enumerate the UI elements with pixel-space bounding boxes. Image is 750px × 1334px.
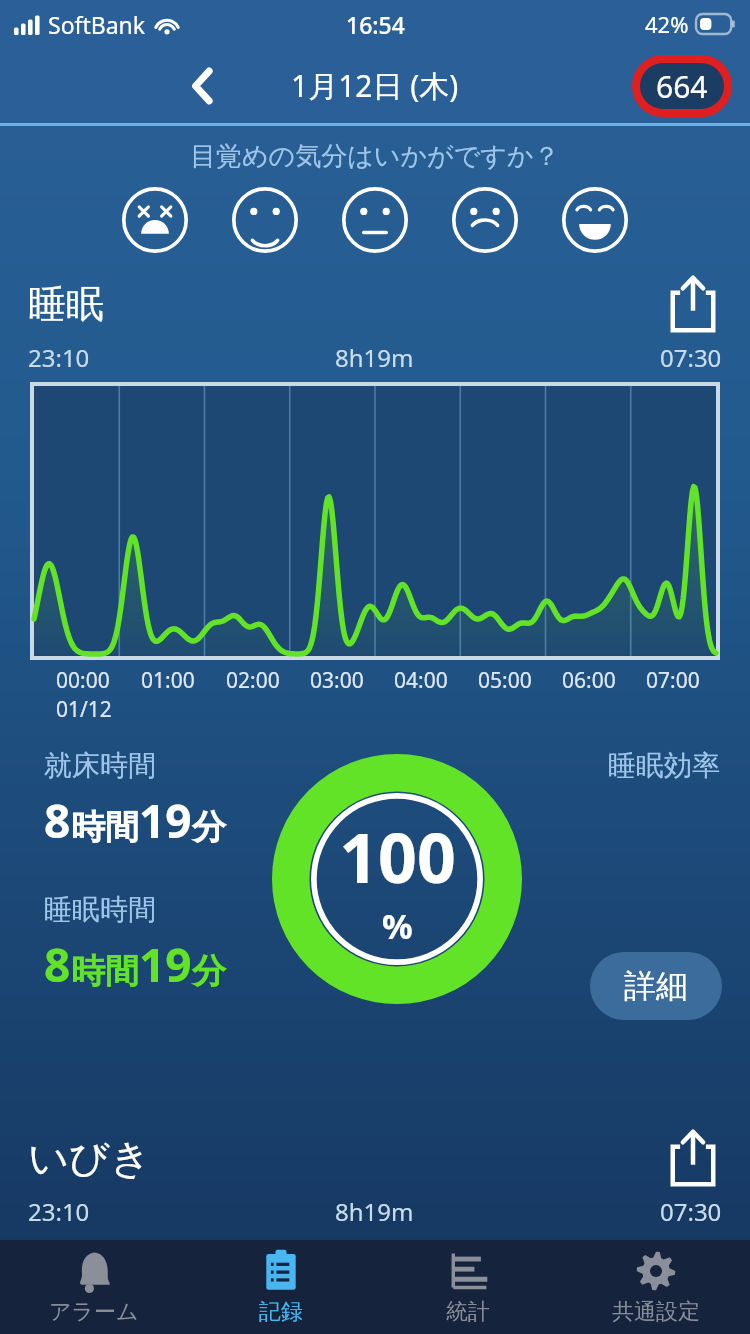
- staticText: 02:00: [226, 666, 280, 695]
- staticText: %: [382, 903, 413, 949]
- button[interactable]: Back: [178, 61, 228, 111]
- staticText: 01/12: [56, 695, 112, 724]
- button[interactable]: 統計: [374, 1240, 562, 1334]
- button[interactable]: 記録: [187, 1240, 374, 1334]
- button[interactable]: 664: [632, 55, 732, 117]
- staticText: 目覚めの気分はいかがですか？: [190, 140, 560, 173]
- staticText: 睡眠効率: [608, 748, 720, 783]
- staticText: 睡眠: [28, 280, 104, 328]
- staticText: 時間: [71, 950, 139, 993]
- staticText: 分: [192, 950, 226, 993]
- staticText: アラーム: [49, 1298, 139, 1326]
- button[interactable]: Mood 2: [340, 185, 410, 255]
- staticText: 19: [139, 933, 192, 996]
- staticText: 03:00: [310, 666, 364, 695]
- staticText: 1月12日 (木): [291, 65, 459, 106]
- button[interactable]: Sleep efficiency 100 percent: [272, 754, 522, 1004]
- staticText: 記録: [259, 1298, 303, 1326]
- staticText: 00:00: [56, 666, 110, 695]
- staticText: 664: [656, 66, 708, 107]
- staticText: 07:30: [660, 1195, 722, 1228]
- staticText: 07:00: [646, 666, 700, 695]
- button[interactable]: Mood 1: [230, 185, 300, 255]
- staticText: 01:00: [141, 666, 195, 695]
- staticText: 23:10: [28, 1195, 90, 1228]
- staticText: 06:00: [562, 666, 616, 695]
- staticText: 42%: [645, 9, 689, 39]
- staticText: SoftBank: [48, 9, 146, 40]
- staticText: 分: [192, 806, 226, 849]
- staticText: 睡眠時間: [44, 892, 156, 927]
- staticText: 時間: [71, 806, 139, 849]
- staticText: 8h19m: [335, 1195, 414, 1228]
- staticText: 8h19m: [335, 341, 414, 374]
- button[interactable]: Mood 3: [450, 185, 520, 255]
- staticText: いびき: [28, 1133, 151, 1183]
- staticText: 8: [44, 789, 71, 852]
- button[interactable]: Share: [664, 275, 722, 333]
- button[interactable]: Share: [664, 1129, 722, 1187]
- staticText: 05:00: [478, 666, 532, 695]
- staticText: 100: [339, 810, 456, 903]
- button[interactable]: アラーム: [0, 1240, 187, 1334]
- staticText: 07:30: [660, 341, 722, 374]
- staticText: 19: [139, 789, 192, 852]
- staticText: 統計: [446, 1298, 490, 1326]
- button[interactable]: 共通設定: [562, 1240, 750, 1334]
- button[interactable]: Mood 4: [560, 185, 630, 255]
- staticText: 23:10: [28, 341, 90, 374]
- staticText: 共通設定: [612, 1298, 700, 1326]
- staticText: 8: [44, 933, 71, 996]
- staticText: 詳細: [624, 966, 688, 1006]
- staticText: 就床時間: [44, 748, 156, 783]
- staticText: 04:00: [394, 666, 448, 695]
- button[interactable]: Mood 0: [120, 185, 190, 255]
- button[interactable]: 詳細: [590, 952, 722, 1020]
- staticText: 16:54: [346, 9, 405, 40]
